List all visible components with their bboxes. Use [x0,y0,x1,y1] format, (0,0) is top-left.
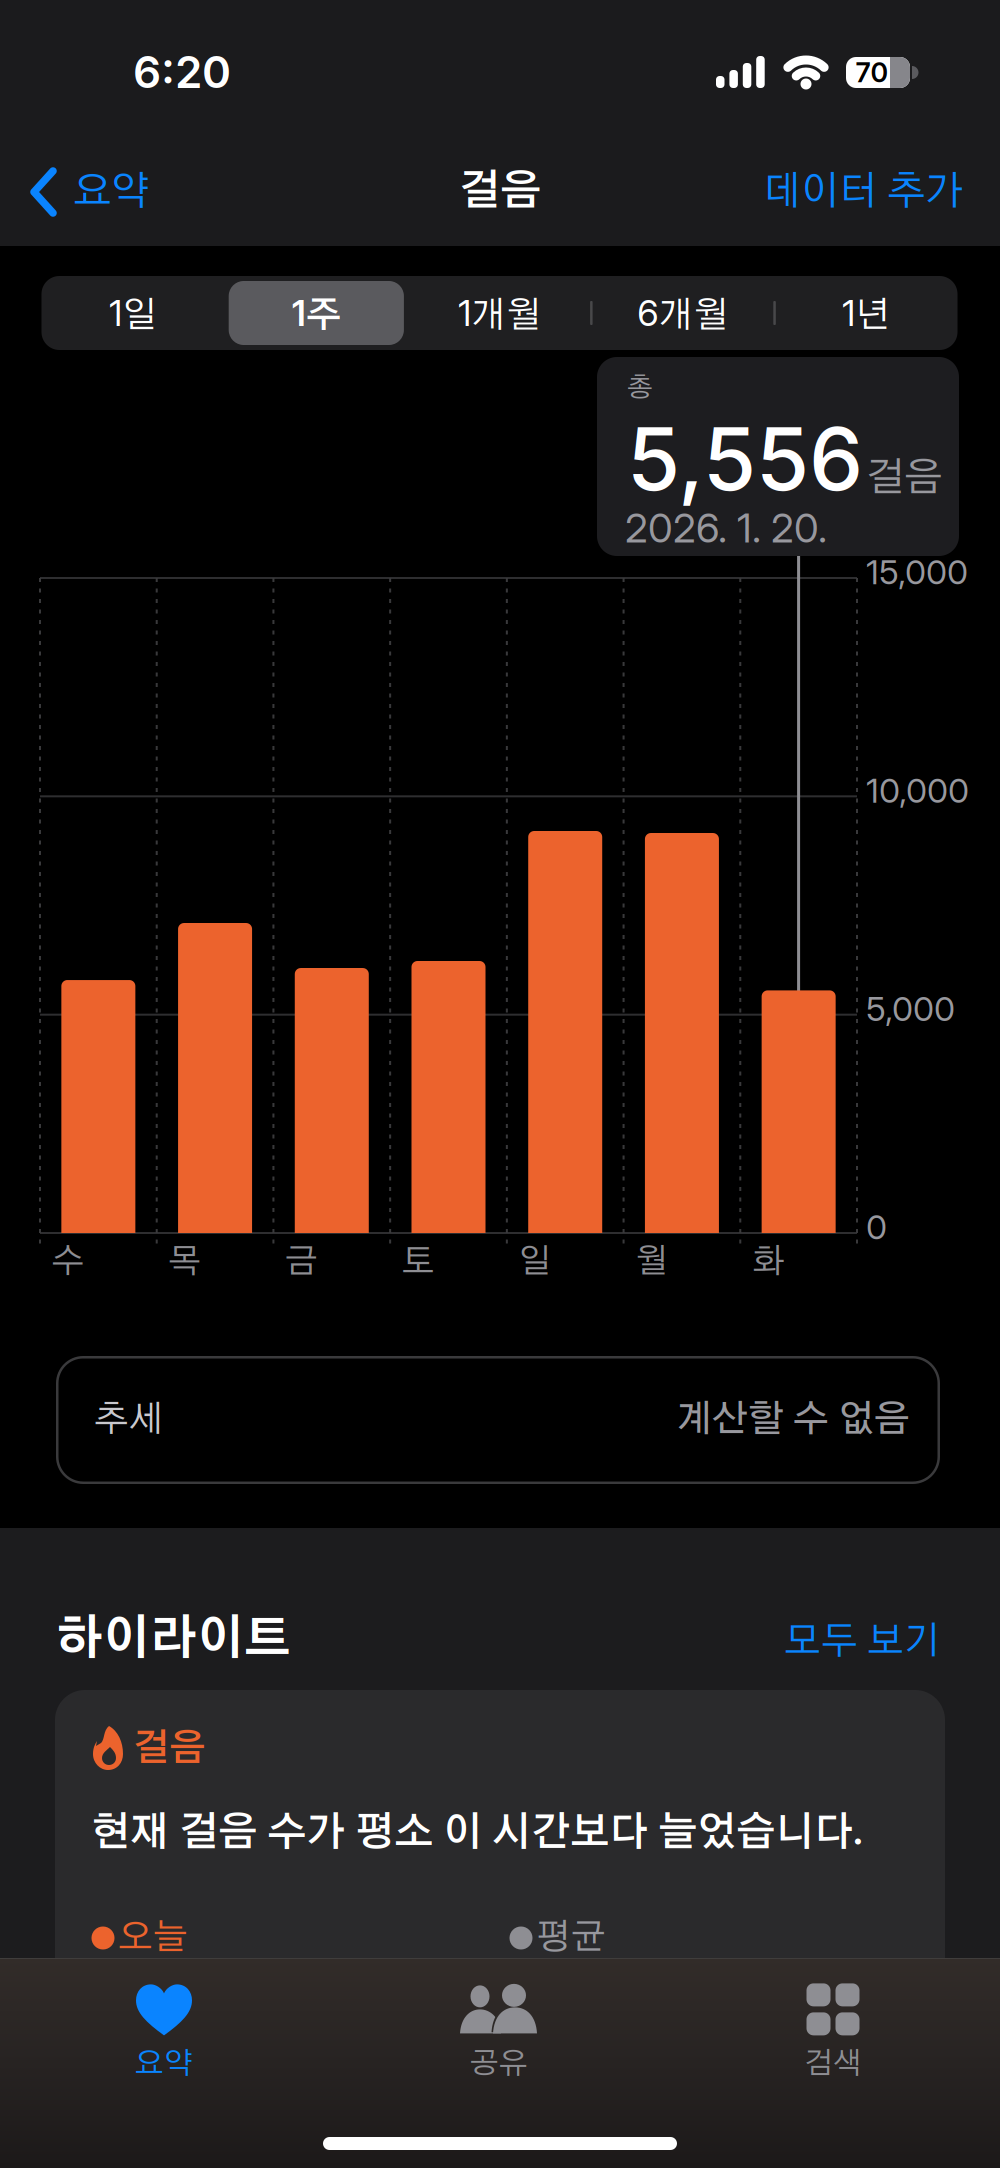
staticText: 공유 [470,2049,528,2079]
staticText: 평균 [536,1920,606,1955]
button[interactable]: 요약 [39,1971,289,2091]
staticText: 계산할 수 없음 [676,1402,910,1438]
staticText: 금 [285,1245,318,1279]
staticText: 2026. 1. 20. [625,504,827,552]
staticText: 걸음 [459,171,541,212]
staticText: 검색 [804,2049,862,2079]
staticText: 모두 보기 [784,1623,941,1661]
button[interactable]: 걸음 [55,1690,945,2168]
staticText: 목 [168,1245,201,1279]
button[interactable]: 1년 [779,280,952,346]
staticText: 1일 [109,292,157,334]
staticText: 토 [402,1245,435,1279]
staticText: 1주 [292,292,341,334]
staticText: 요약 [135,2049,193,2079]
staticText: 0 [866,1207,887,1247]
staticText: 6개월 [637,292,728,334]
button[interactable]: 1일 [46,280,220,346]
staticText: 요약 [73,172,149,211]
staticText: 70 [855,57,888,88]
staticText: 수 [51,1245,84,1279]
button[interactable]: 뒤로 [31,162,149,222]
staticText: 걸음 [133,1731,205,1767]
staticText: 1년 [842,292,890,334]
button[interactable]: 1개월 [413,280,586,346]
staticText: 10,000 [866,770,969,810]
staticText: 걸음 [866,459,942,498]
staticText: 화 [752,1245,785,1279]
button[interactable]: 6개월 [596,280,769,346]
staticText: 1개월 [458,292,541,334]
button[interactable]: 1주 [230,280,403,346]
button[interactable]: 모두 보기 [661,1614,941,1670]
staticText: 월 [635,1245,668,1279]
staticText: 추세 [94,1402,164,1437]
staticText: 5,556 [627,408,863,510]
button[interactable]: 검색 [708,1971,958,2091]
button[interactable]: 추세 [56,1356,940,1484]
staticText: 하이라이트 [56,1617,291,1663]
staticText: 15,000 [866,552,968,592]
staticText: 6:20 [133,46,231,98]
button[interactable]: 데이터 추가 [663,162,963,222]
staticText: 데이터 추가 [763,172,963,211]
staticText: 현재 걸음 수가 평소 이 시간보다 늘었습니다. [91,1806,863,1854]
staticText: 5,000 [866,989,955,1029]
staticText: 오늘 [118,1920,188,1955]
button[interactable]: 공유 [374,1971,624,2091]
staticText: 총 [627,375,653,401]
staticText: 일 [518,1245,551,1279]
